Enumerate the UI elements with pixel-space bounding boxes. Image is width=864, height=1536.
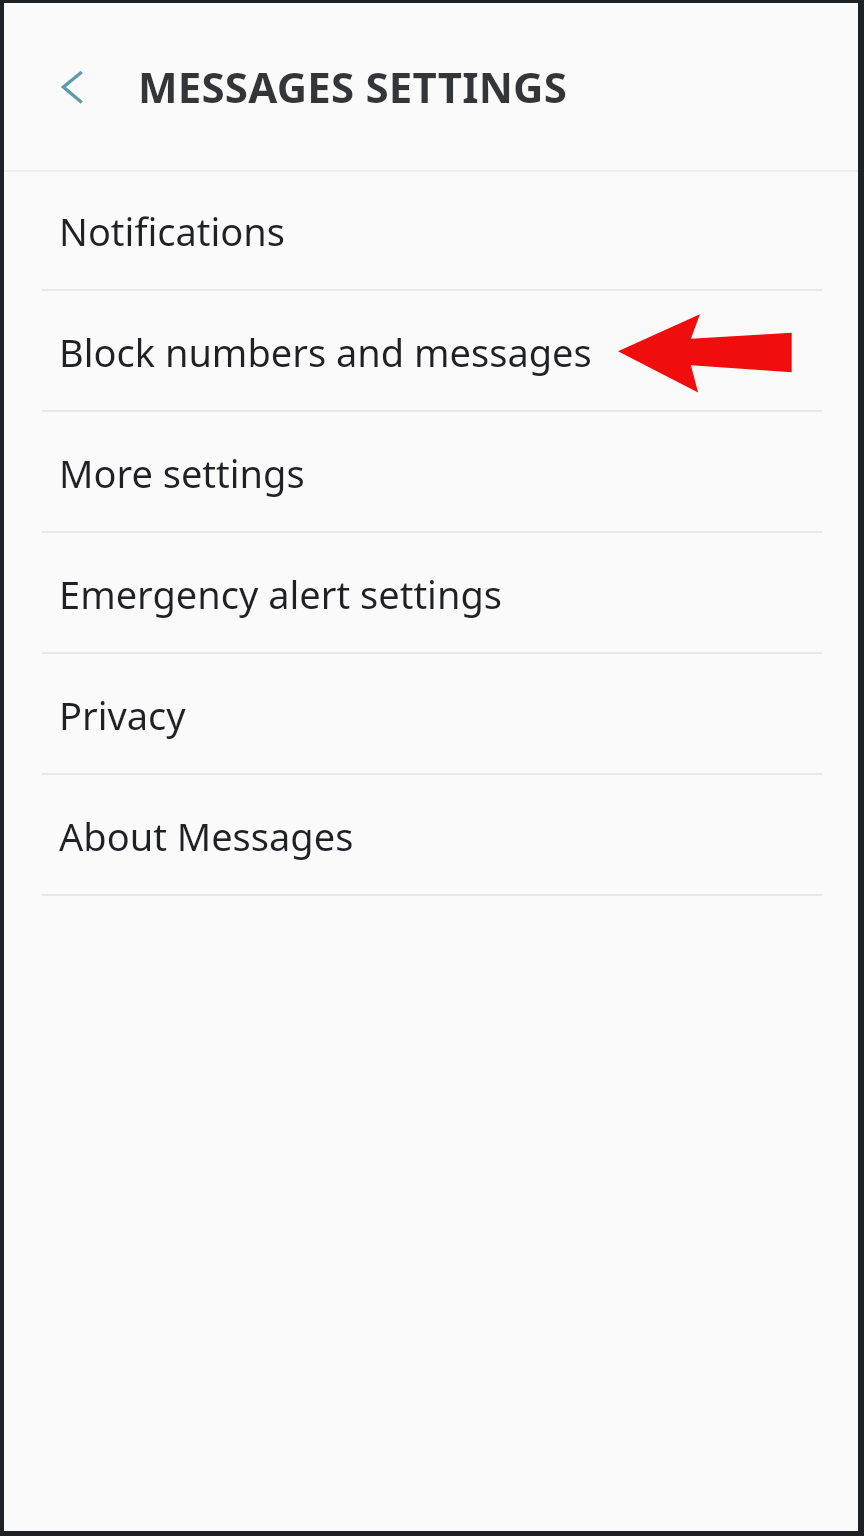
button[interactable]: Privacy (4, 656, 858, 773)
staticText: More settings (59, 447, 305, 499)
button[interactable]: More settings (4, 414, 858, 531)
staticText: Privacy (59, 689, 186, 741)
button[interactable]: About Messages (4, 777, 858, 894)
button[interactable]: Back (34, 48, 112, 126)
button[interactable]: Block numbers and messages (4, 293, 858, 410)
staticText: MESSAGES SETTINGS (138, 58, 568, 115)
staticText: Block numbers and messages (59, 326, 592, 378)
staticText: Notifications (59, 205, 286, 257)
button[interactable]: Notifications (4, 172, 858, 289)
staticText: About Messages (59, 810, 354, 862)
staticText: Emergency alert settings (59, 568, 502, 620)
button[interactable]: Emergency alert settings (4, 535, 858, 652)
